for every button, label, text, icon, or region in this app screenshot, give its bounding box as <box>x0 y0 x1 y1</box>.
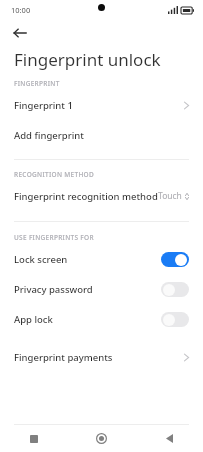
button[interactable]: Recents <box>0 425 67 452</box>
button[interactable]: Lock screen <box>0 244 203 274</box>
staticText: FINGERPRINT <box>14 79 60 88</box>
staticText: App lock <box>14 313 53 326</box>
staticText: Add fingerprint <box>14 129 84 142</box>
staticText: Fingerprint payments <box>14 351 113 364</box>
staticText: Fingerprint 1 <box>14 99 73 112</box>
button[interactable]: Back <box>135 425 203 452</box>
staticText: USE FINGERPRINTS FOR <box>14 233 94 242</box>
button[interactable]: Home <box>67 425 135 452</box>
staticText: 10:00 <box>11 5 31 15</box>
staticText: Touch <box>158 190 182 202</box>
button[interactable]: Privacy password <box>0 274 203 304</box>
button[interactable]: Fingerprint recognition method <box>0 181 203 211</box>
button[interactable]: App lock <box>0 304 203 334</box>
button[interactable]: Fingerprint 1 <box>0 90 203 120</box>
staticText: Lock screen <box>14 253 68 266</box>
staticText: RECOGNITION METHOD <box>14 170 95 179</box>
button[interactable]: Add fingerprint <box>0 120 203 150</box>
button[interactable]: Fingerprint payments <box>0 342 203 372</box>
staticText: Fingerprint unlock <box>14 48 161 71</box>
button[interactable]: Back <box>8 21 32 45</box>
staticText: Fingerprint recognition method <box>14 190 158 203</box>
staticText: Privacy password <box>14 283 93 296</box>
